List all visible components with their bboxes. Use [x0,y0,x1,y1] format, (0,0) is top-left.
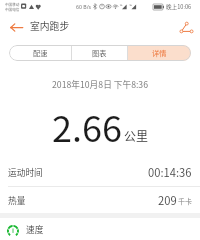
staticText: 速度 [26,223,44,236]
button[interactable]: 热量 [0,187,200,214]
button[interactable]: Share [176,17,197,37]
button[interactable]: 运动时间 [0,159,200,186]
staticText: 晚上10:06 [166,3,192,11]
staticText: 配速 [33,48,48,58]
staticText: 00:14:36 [148,164,192,180]
staticText: 中国移动 [5,2,20,7]
staticText: 2018年10月8日 下午8:36 [52,78,149,91]
staticText: 60 B/s [76,3,92,10]
staticText: 运动时间 [8,166,43,179]
staticText: 209 [158,192,177,208]
staticText: 详情 [152,48,167,58]
staticText: 中国电信 [5,7,20,12]
button[interactable]: 图表 [72,45,127,61]
button[interactable]: Back [4,17,28,37]
button[interactable]: 配速 [9,45,71,61]
staticText: 图表 [92,48,107,58]
staticText: 室内跑步 [30,19,70,33]
button[interactable]: 详情 [128,45,191,61]
staticText: 2.66 [52,100,122,152]
staticText: 千卡 [178,196,192,206]
button[interactable]: 速度 [0,218,200,240]
staticText: 公里 [124,127,149,144]
staticText: 热量 [8,194,26,207]
